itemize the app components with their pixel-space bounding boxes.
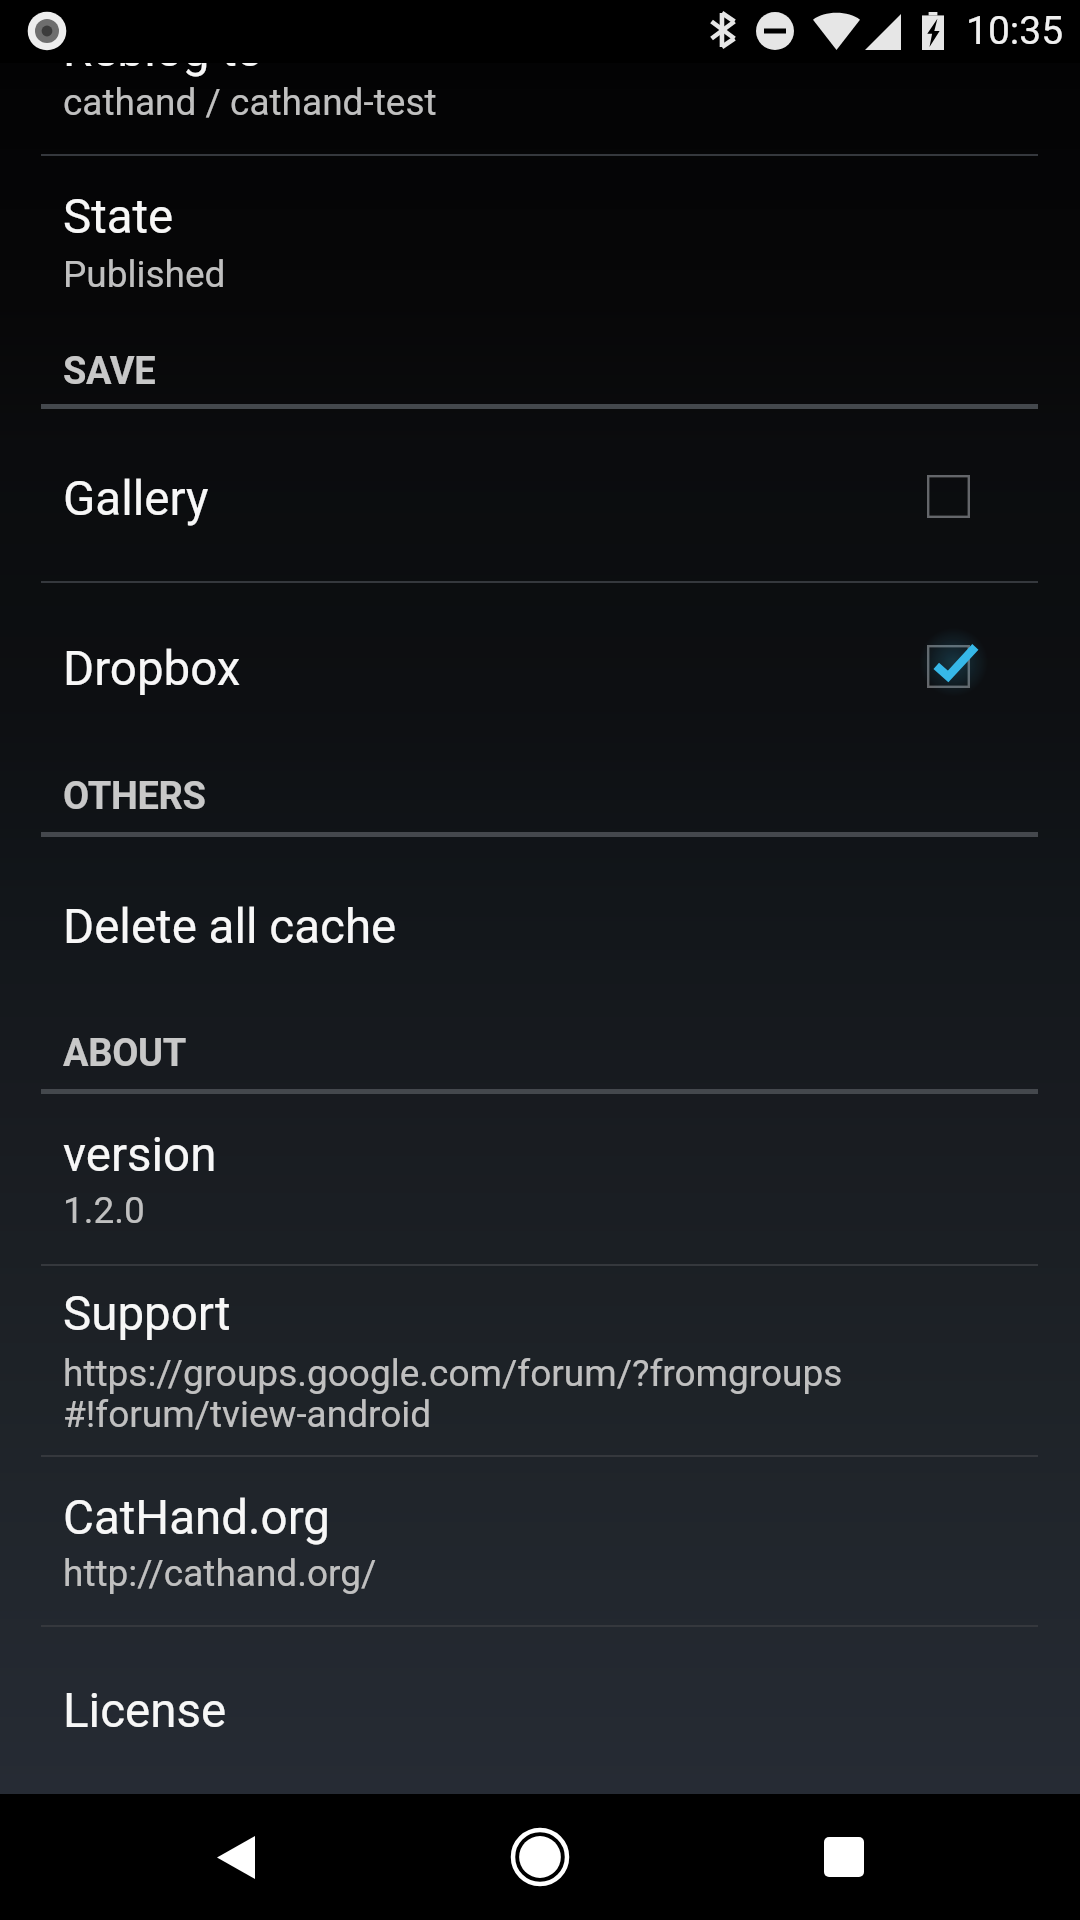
button[interactable]: Support [0, 1266, 1080, 1455]
staticText: http://cathand.org/ [63, 1552, 377, 1595]
staticText: ABOUT [63, 1031, 187, 1076]
button[interactable]: version [0, 1093, 1080, 1264]
button[interactable]: Home [480, 1797, 600, 1917]
staticText: SAVE [63, 349, 156, 394]
staticText: Gallery [63, 471, 209, 527]
staticText: State [63, 189, 174, 245]
staticText: https://groups.google.com/forum/?fromgro… [63, 1352, 843, 1436]
staticText: OTHERS [63, 774, 206, 819]
button[interactable]: Gallery [0, 409, 1080, 581]
staticText: CatHand.org [63, 1490, 330, 1546]
button[interactable]: Delete all cache [0, 837, 1080, 1003]
staticText: Published [63, 253, 226, 296]
staticText: cathand / cathand-test [63, 81, 437, 124]
button[interactable]: License [0, 1627, 1080, 1794]
button[interactable]: CatHand.org [0, 1457, 1080, 1625]
staticText: License [63, 1683, 227, 1739]
button[interactable]: Reblog to [0, 0, 1080, 154]
staticText: Delete all cache [63, 899, 397, 955]
button[interactable]: Recent apps [784, 1797, 904, 1917]
staticText: Reblog to [63, 22, 264, 78]
staticText: 1.2.0 [63, 1189, 145, 1232]
staticText: Dropbox [63, 641, 241, 697]
button[interactable]: Dropbox [0, 583, 1080, 748]
button[interactable]: State [0, 156, 1080, 320]
button[interactable]: Back [176, 1797, 296, 1917]
staticText: version [63, 1127, 217, 1183]
staticText: 10:35 [966, 8, 1064, 54]
staticText: Support [63, 1286, 231, 1342]
